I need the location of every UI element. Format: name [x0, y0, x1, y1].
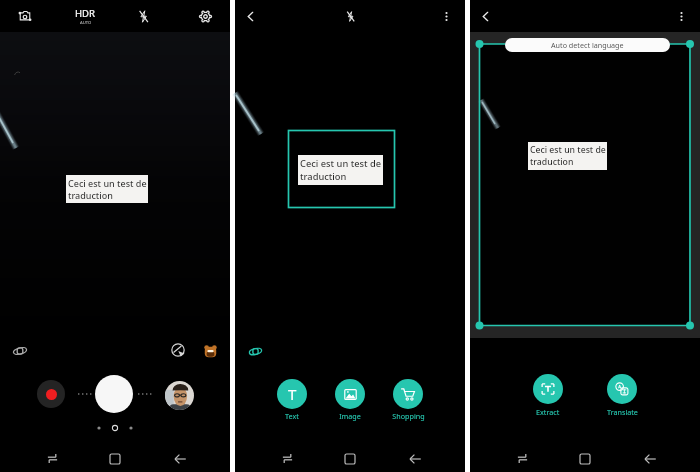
- button[interactable]: Record video: [37, 380, 65, 408]
- button[interactable]: Bixby Vision: [244, 340, 266, 362]
- staticText: Ceci est un test de: [300, 157, 382, 170]
- button[interactable]: Flash off: [334, 0, 366, 32]
- staticText: traduction: [300, 170, 347, 183]
- button[interactable]: Back: [469, 0, 501, 32]
- button[interactable]: Flash off: [120, 0, 166, 32]
- button[interactable]: Gallery: [165, 381, 194, 410]
- button[interactable]: Auto detect language: [505, 38, 670, 52]
- button[interactable]: Effects: [166, 338, 190, 362]
- button[interactable]: Extract: [523, 374, 573, 417]
- staticText: Ceci est un test de: [68, 177, 147, 189]
- button[interactable]: Image: [325, 379, 375, 421]
- staticText: AUTO: [80, 20, 92, 26]
- staticText: Text: [285, 411, 299, 421]
- button[interactable]: Home: [570, 445, 600, 472]
- button[interactable]: Shopping: [383, 379, 433, 421]
- staticText: Image: [339, 411, 361, 421]
- button[interactable]: HDR auto: [50, 0, 120, 32]
- button[interactable]: Settings: [166, 0, 230, 32]
- button[interactable]: Recents: [507, 445, 537, 472]
- button[interactable]: Switch camera: [0, 0, 50, 32]
- staticText: Shopping: [392, 411, 425, 421]
- button[interactable]: Back: [165, 445, 195, 472]
- button[interactable]: Recents: [37, 445, 67, 472]
- staticText: traduction: [68, 189, 113, 201]
- button[interactable]: Take photo: [95, 375, 133, 413]
- button[interactable]: Back: [635, 445, 665, 472]
- staticText: Extract: [536, 407, 560, 417]
- staticText: Translate: [607, 407, 638, 417]
- button[interactable]: More options: [665, 0, 697, 32]
- button[interactable]: Translate: [597, 374, 647, 417]
- staticText: Ceci est un test de: [530, 144, 606, 156]
- button[interactable]: More options: [430, 0, 462, 32]
- staticText: T: [288, 384, 297, 404]
- button[interactable]: Back: [234, 0, 266, 32]
- staticText: traduction: [530, 156, 574, 168]
- button[interactable]: Bixby Vision: [8, 339, 32, 363]
- button[interactable]: Home: [335, 445, 365, 472]
- staticText: Auto detect language: [551, 40, 624, 50]
- button[interactable]: AR Emoji: [199, 340, 221, 362]
- staticText: HDR: [75, 7, 96, 20]
- button[interactable]: Recents: [272, 445, 302, 472]
- button[interactable]: Home: [100, 445, 130, 472]
- button[interactable]: T: [267, 379, 317, 421]
- button[interactable]: Back: [400, 445, 430, 472]
